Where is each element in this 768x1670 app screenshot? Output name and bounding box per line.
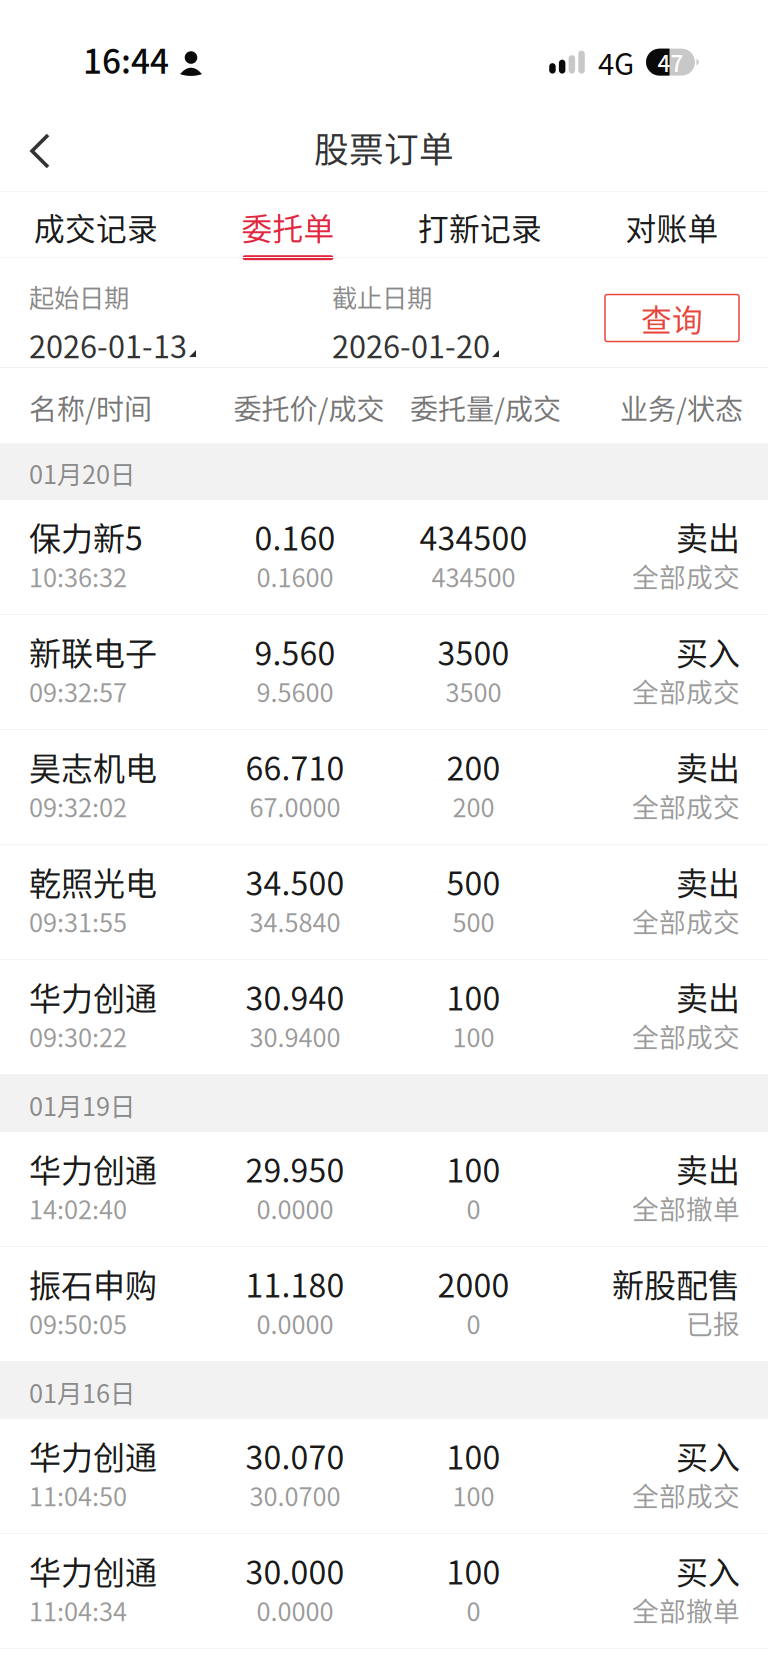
- staticText: 对账单: [625, 205, 718, 249]
- staticText: 已报: [686, 1303, 740, 1342]
- button[interactable]: 起始日期: [29, 278, 201, 367]
- staticText: 全部成交: [632, 671, 740, 710]
- button[interactable]: 对账单: [576, 192, 768, 258]
- staticText: 乾照光电: [29, 858, 157, 905]
- button[interactable]: 华力创通: [0, 960, 768, 1075]
- staticText: 0.0000: [256, 1190, 333, 1226]
- staticText: 0.160: [254, 513, 335, 560]
- staticText: 买入: [676, 1432, 740, 1478]
- button[interactable]: 打新记录: [384, 192, 576, 258]
- staticText: 34.500: [245, 858, 344, 905]
- staticText: 成交记录: [34, 205, 158, 249]
- staticText: 起始日期: [29, 278, 129, 315]
- staticText: 9.5600: [256, 673, 333, 709]
- staticText: 0: [466, 1305, 480, 1341]
- staticText: 10:36:32: [29, 558, 127, 594]
- button[interactable]: 保力新5: [0, 500, 768, 615]
- staticText: 买入: [676, 1547, 740, 1593]
- staticText: 100: [446, 973, 500, 1020]
- staticText: 0.1600: [256, 558, 333, 594]
- staticText: 卖出: [676, 743, 740, 789]
- staticText: 卖出: [676, 1145, 740, 1191]
- staticText: 100: [446, 1547, 500, 1594]
- staticText: 全部撤单: [632, 1188, 740, 1227]
- button[interactable]: 截止日期: [332, 278, 504, 367]
- staticText: 0.0000: [256, 1305, 333, 1341]
- staticText: 华力创通: [29, 973, 157, 1020]
- button[interactable]: 华力创通: [0, 1419, 768, 1534]
- button[interactable]: 成交记录: [0, 192, 192, 258]
- staticText: 09:31:55: [29, 903, 127, 939]
- staticText: 业务/状态: [620, 387, 743, 428]
- staticText: 100: [452, 1018, 494, 1054]
- staticText: 09:32:02: [29, 788, 127, 824]
- button[interactable]: 查询: [605, 294, 739, 341]
- staticText: 34.5840: [249, 903, 340, 939]
- staticText: 全部成交: [632, 1475, 740, 1514]
- button[interactable]: 昊志机电: [0, 730, 768, 845]
- button[interactable]: 华力创通: [0, 1534, 768, 1649]
- staticText: 卖出: [676, 858, 740, 904]
- staticText: 查询: [641, 296, 703, 340]
- staticText: 29.950: [245, 1145, 344, 1192]
- staticText: 保力新5: [29, 513, 143, 560]
- button[interactable]: 新联电子: [0, 615, 768, 730]
- button[interactable]: 振石申购: [0, 1247, 768, 1362]
- staticText: 434500: [431, 558, 515, 594]
- staticText: 2000: [437, 1260, 509, 1307]
- staticText: 01月20日: [29, 455, 135, 491]
- staticText: 500: [446, 858, 500, 905]
- staticText: 67.0000: [249, 788, 340, 824]
- staticText: 卖出: [676, 513, 740, 559]
- button[interactable]: 乾照光电: [0, 845, 768, 960]
- staticText: 全部撤单: [632, 1590, 740, 1629]
- button[interactable]: 委托单: [192, 192, 384, 258]
- button[interactable]: 返回: [0, 110, 80, 192]
- staticText: 09:30:22: [29, 1018, 127, 1054]
- staticText: 全部成交: [632, 556, 740, 595]
- staticText: 200: [452, 788, 494, 824]
- staticText: 66.710: [245, 743, 344, 790]
- staticText: 昊志机电: [29, 743, 157, 790]
- staticText: 华力创通: [29, 1145, 157, 1192]
- staticText: 卖出: [676, 973, 740, 1019]
- staticText: 0: [466, 1592, 480, 1628]
- staticText: 新联电子: [29, 628, 157, 675]
- staticText: 16:44: [83, 35, 169, 83]
- staticText: 全部成交: [632, 901, 740, 940]
- staticText: 3500: [445, 673, 501, 709]
- staticText: 委托价/成交: [233, 387, 384, 428]
- staticText: 9.560: [254, 628, 335, 675]
- button[interactable]: 华力创通: [0, 1132, 768, 1247]
- staticText: 华力创通: [29, 1547, 157, 1594]
- staticText: 200: [446, 743, 500, 790]
- staticText: 华力创通: [29, 1432, 157, 1479]
- staticText: 11.180: [245, 1260, 344, 1307]
- staticText: 500: [452, 903, 494, 939]
- staticText: 11:04:50: [29, 1477, 127, 1513]
- staticText: 3500: [437, 628, 509, 675]
- staticText: 新股配售: [612, 1260, 740, 1306]
- staticText: 全部成交: [632, 786, 740, 825]
- staticText: 打新记录: [418, 205, 542, 249]
- staticText: 委托量/成交: [410, 387, 561, 428]
- staticText: 30.0700: [249, 1477, 340, 1513]
- staticText: 30.940: [245, 973, 344, 1020]
- staticText: 0.0000: [256, 1592, 333, 1628]
- staticText: 全部成交: [632, 1016, 740, 1055]
- staticText: 买入: [676, 628, 740, 674]
- staticText: 0: [466, 1190, 480, 1226]
- staticText: 47: [657, 46, 683, 78]
- staticText: 截止日期: [332, 278, 432, 315]
- staticText: 09:32:57: [29, 673, 127, 709]
- staticText: 名称/时间: [29, 387, 152, 428]
- staticText: 09:50:05: [29, 1305, 127, 1341]
- staticText: 振石申购: [29, 1260, 157, 1307]
- staticText: 30.9400: [249, 1018, 340, 1054]
- staticText: 434500: [419, 513, 527, 560]
